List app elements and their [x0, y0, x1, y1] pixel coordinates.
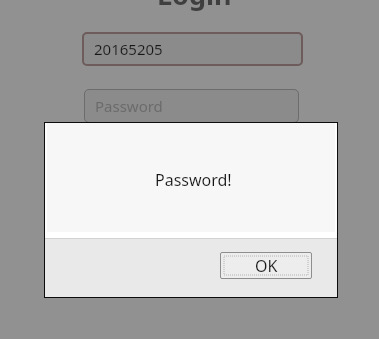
staticText: OK — [255, 255, 278, 277]
staticText: Login — [157, 0, 232, 13]
button[interactable]: Password — [84, 89, 299, 123]
button[interactable]: 20165205 — [82, 32, 303, 66]
staticText: 20165205 — [94, 39, 163, 59]
other: Password dialog — [44, 122, 338, 298]
button[interactable]: OK — [220, 252, 312, 279]
staticText: Password! — [155, 169, 232, 191]
staticText: Password — [95, 96, 163, 116]
